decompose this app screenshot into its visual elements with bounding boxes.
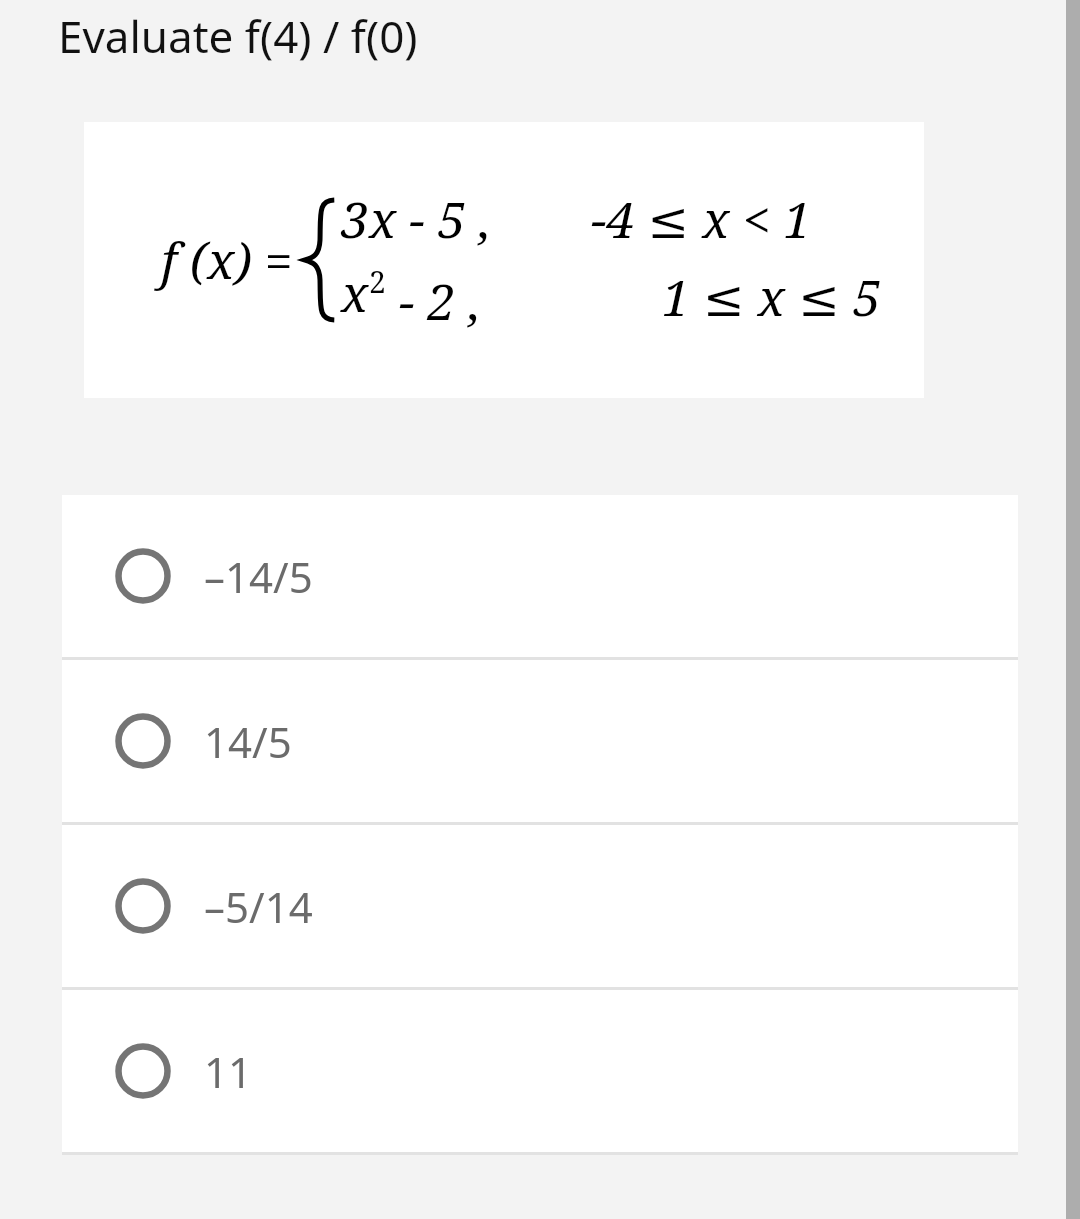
- staticText: –14/5: [204, 548, 313, 605]
- button[interactable]: –5/14: [62, 825, 1018, 987]
- staticText: 11: [204, 1043, 253, 1100]
- staticText: 1 ≤ x ≤ 5: [591, 263, 881, 331]
- staticText: –5/14: [204, 878, 313, 935]
- button[interactable]: 14/5: [62, 660, 1018, 822]
- staticText: Evaluate f(4) / f(0): [58, 6, 418, 66]
- staticText: − 2 ,: [386, 267, 481, 335]
- staticText: −4 ≤ x < 1: [591, 185, 881, 253]
- staticText: 14/5: [204, 713, 292, 770]
- staticText: f (x) =: [161, 226, 293, 294]
- staticText: x: [341, 259, 369, 327]
- button[interactable]: 11: [62, 990, 1018, 1152]
- button[interactable]: –14/5: [62, 495, 1018, 657]
- staticText: 2: [369, 261, 386, 302]
- staticText: 3x − 5 ,: [341, 185, 492, 253]
